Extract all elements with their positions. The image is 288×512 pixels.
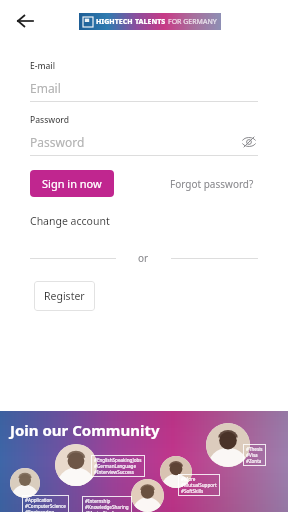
staticText: #GermanLanguage — [94, 463, 136, 469]
button[interactable]: HIGHTECH — [79, 13, 221, 30]
staticText: #Visa — [246, 452, 258, 458]
staticText: #InterviewSuccess — [94, 469, 134, 475]
staticText: FOR GERMANY — [168, 17, 217, 27]
staticText: #MasterStudies — [85, 510, 119, 512]
staticText: #KnowledgeSharing — [85, 504, 129, 510]
staticText: #Engineering — [25, 509, 55, 512]
staticText: #Application — [25, 497, 53, 503]
button[interactable]: Forgot password? — [166, 173, 258, 195]
staticText: #SoftSkills — [181, 488, 204, 494]
staticText: Password — [30, 134, 85, 150]
staticText: Sign in now — [42, 176, 102, 191]
staticText: #ComputerScience — [25, 503, 66, 509]
staticText: #More — [181, 476, 196, 482]
staticText: Register — [44, 289, 85, 303]
staticText: or — [138, 251, 149, 265]
button[interactable]: Register — [34, 281, 95, 311]
staticText: Email — [30, 80, 61, 96]
staticText: HIGHTECH — [96, 17, 135, 27]
button[interactable]: Sign in now — [30, 170, 114, 197]
staticText: Change account — [30, 214, 110, 228]
staticText: #EnglishSpeakingJobs — [94, 457, 142, 463]
staticText: Password — [30, 114, 70, 126]
staticText: #Internship — [85, 498, 111, 504]
button[interactable]: Back — [8, 4, 42, 38]
staticText: Join our Community — [10, 420, 160, 440]
button[interactable]: Show password — [240, 133, 258, 151]
staticText: TALENTS — [135, 17, 168, 27]
staticText: Forgot password? — [170, 177, 254, 191]
button[interactable]: Change account — [30, 211, 110, 231]
staticText: E-mail — [30, 60, 55, 72]
staticText: #Thesis — [246, 446, 263, 452]
staticText: #Zonta — [246, 458, 262, 464]
staticText: #MutualSupport — [181, 482, 217, 488]
